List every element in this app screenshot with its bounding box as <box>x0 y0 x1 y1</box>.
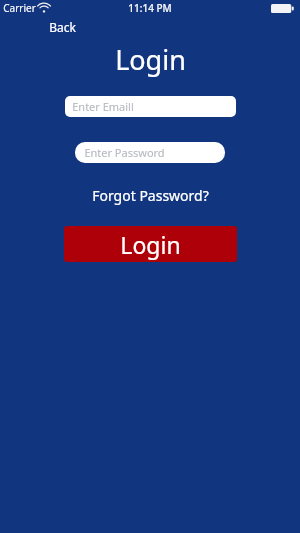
staticText: Back <box>49 19 76 35</box>
staticText: Enter Emaill <box>72 99 134 114</box>
button[interactable]: Back <box>44 17 81 37</box>
staticText: Login <box>120 229 181 260</box>
staticText: Login <box>115 41 186 78</box>
staticText: 11:14 PM <box>128 1 172 15</box>
staticText: Enter Password <box>84 145 165 160</box>
button[interactable]: Enter Emaill <box>65 96 236 117</box>
staticText: Carrier <box>3 1 36 15</box>
button[interactable]: Forgot Password? <box>88 184 213 207</box>
button[interactable]: Enter Password <box>75 142 225 163</box>
staticText: Forgot Password? <box>92 186 209 205</box>
button[interactable]: Login <box>64 226 237 262</box>
